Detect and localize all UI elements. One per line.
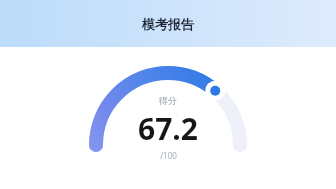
button[interactable]: 得分 67.2 / 100 (0, 47, 336, 189)
staticText: 得分 (159, 95, 177, 106)
staticText: /100 (160, 150, 177, 161)
staticText: 模考报告 (142, 16, 194, 32)
staticText: 67.2 (138, 108, 198, 149)
button[interactable]: 模考报告 (0, 0, 336, 47)
